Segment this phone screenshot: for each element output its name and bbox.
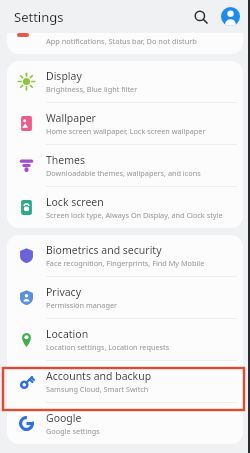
staticText: Settings — [14, 8, 64, 26]
staticText: Google settings — [46, 426, 100, 436]
staticText: Themes — [46, 153, 86, 167]
button[interactable]: Themes — [7, 145, 243, 187]
button[interactable]: Privacy — [7, 277, 243, 319]
button[interactable]: Biometrics and security — [7, 235, 243, 277]
staticText: Face recognition, Fingerprints, Find My … — [46, 258, 205, 268]
staticText: Downloadable themes, wallpapers, and ico… — [46, 168, 201, 178]
button[interactable]: Location — [7, 319, 243, 361]
staticText: Display — [46, 69, 82, 83]
button[interactable]: Lock screen — [7, 187, 243, 228]
button[interactable]: Display — [7, 61, 243, 103]
staticText: Privacy — [46, 285, 82, 299]
button[interactable]: Account — [221, 7, 240, 26]
staticText: Lock screen — [46, 195, 104, 209]
staticText: App notifications, Status bar, Do not di… — [46, 36, 197, 46]
button[interactable]: Search — [190, 6, 212, 28]
button[interactable]: Accounts and backup — [7, 361, 243, 403]
staticText: Google — [46, 411, 82, 425]
staticText: Location — [46, 327, 89, 341]
staticText: Brightness, Blue light filter — [46, 84, 138, 94]
staticText: Screen lock type, Always On Display, and… — [46, 210, 223, 220]
staticText: Permission manager — [46, 300, 118, 310]
staticText: Wallpaper — [46, 111, 96, 125]
staticText: Samsung Cloud, Smart Switch — [46, 384, 149, 394]
button[interactable]: App notifications, Status bar, Do not di… — [7, 33, 243, 54]
staticText: Accounts and backup — [46, 369, 152, 383]
staticText: Biometrics and security — [46, 243, 162, 257]
staticText: Home screen wallpaper, Lock screen wallp… — [46, 126, 206, 136]
button[interactable]: Google — [7, 403, 243, 444]
staticText: Location settings, Location requests — [46, 342, 170, 352]
button[interactable]: Wallpaper — [7, 103, 243, 145]
